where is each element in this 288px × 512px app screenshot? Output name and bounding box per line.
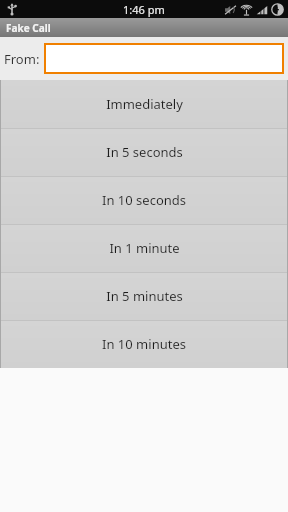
staticText: Fake Call bbox=[6, 21, 51, 35]
staticText: In 5 minutes bbox=[106, 287, 183, 305]
button[interactable]: In 5 seconds bbox=[0, 128, 288, 176]
button[interactable]: In 10 seconds bbox=[0, 176, 288, 224]
button[interactable]: Immediately bbox=[0, 80, 288, 128]
button[interactable]: In 1 minute bbox=[0, 224, 288, 272]
button[interactable] bbox=[44, 43, 284, 74]
staticText: In 5 seconds bbox=[106, 143, 183, 161]
staticText: From: bbox=[4, 50, 40, 68]
staticText: Immediately bbox=[106, 95, 183, 113]
staticText: In 1 minute bbox=[109, 239, 180, 257]
staticText: In 10 minutes bbox=[102, 335, 186, 353]
staticText: 1:46 pm bbox=[123, 2, 165, 17]
button[interactable]: In 5 minutes bbox=[0, 272, 288, 320]
staticText: In 10 seconds bbox=[102, 191, 186, 209]
button[interactable]: In 10 minutes bbox=[0, 320, 288, 368]
